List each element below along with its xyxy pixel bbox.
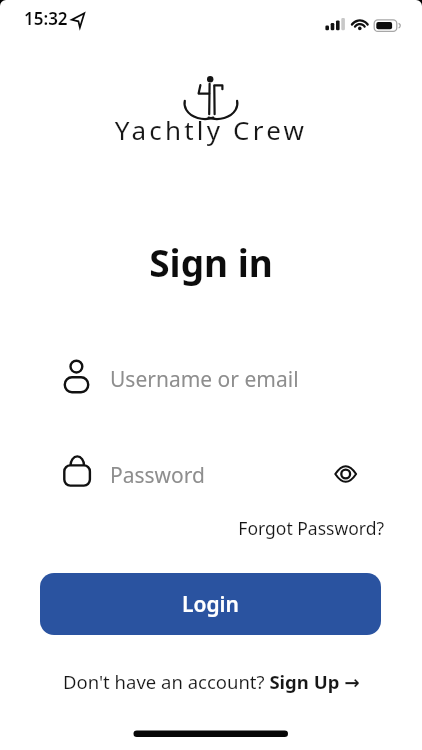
button[interactable]: Username or email	[55, 348, 367, 398]
staticText: 15:32	[24, 7, 68, 30]
button[interactable]: Login	[40, 573, 381, 635]
button[interactable]: Don't have an account? Sign Up →	[63, 669, 360, 694]
button[interactable]: Forgot Password?	[208, 514, 384, 544]
staticText: Forgot Password?	[208, 516, 384, 540]
staticText: Password	[110, 461, 205, 490]
staticText: Username or email	[110, 365, 299, 394]
button[interactable]: Password	[55, 446, 313, 496]
staticText: Login	[182, 590, 239, 619]
staticText: Sign in	[0, 237, 422, 287]
staticText: Yachtly Crew	[0, 112, 422, 147]
staticText: Don't have an account? Sign Up →	[63, 669, 360, 694]
button[interactable]	[328, 458, 364, 490]
